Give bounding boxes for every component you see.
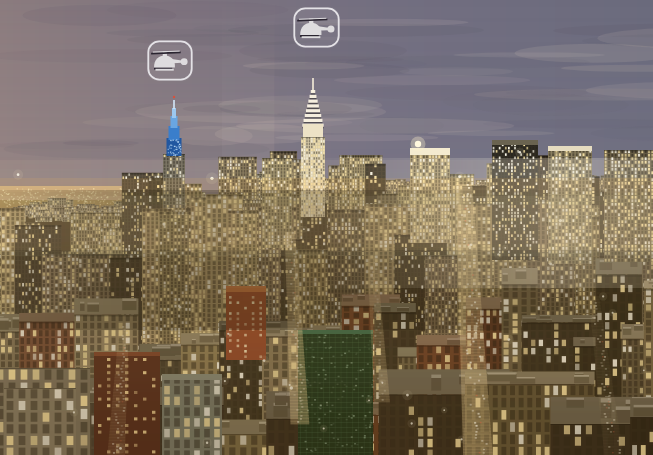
button[interactable]: Helicopter [147,40,193,81]
button[interactable]: Helicopter [293,7,340,48]
